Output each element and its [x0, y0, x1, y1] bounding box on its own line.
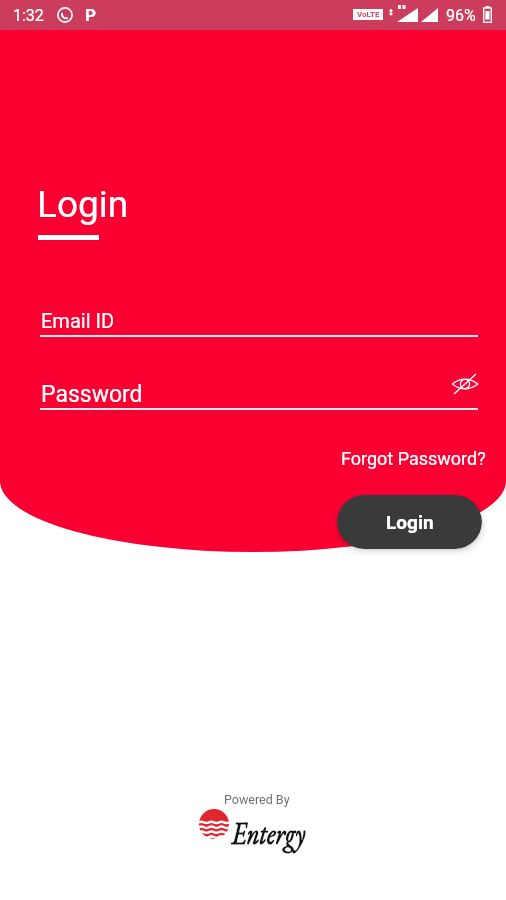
staticText: VoLTE [357, 10, 380, 19]
button[interactable]: Password [40, 373, 440, 410]
staticText: 96% [446, 6, 476, 25]
staticText: Login [37, 183, 129, 226]
button[interactable]: Email ID [40, 303, 478, 337]
button[interactable]: Show password [451, 370, 479, 398]
staticText: Entergy [232, 813, 306, 854]
staticText: Email ID [41, 309, 115, 332]
staticText: Powered By [224, 792, 290, 807]
staticText: P [85, 5, 96, 25]
staticText: 1:32 [13, 6, 44, 25]
button[interactable]: Forgot Password? [335, 445, 492, 472]
staticText: Login [386, 511, 434, 533]
staticText: Password [41, 381, 143, 408]
button[interactable]: Login [337, 495, 482, 549]
